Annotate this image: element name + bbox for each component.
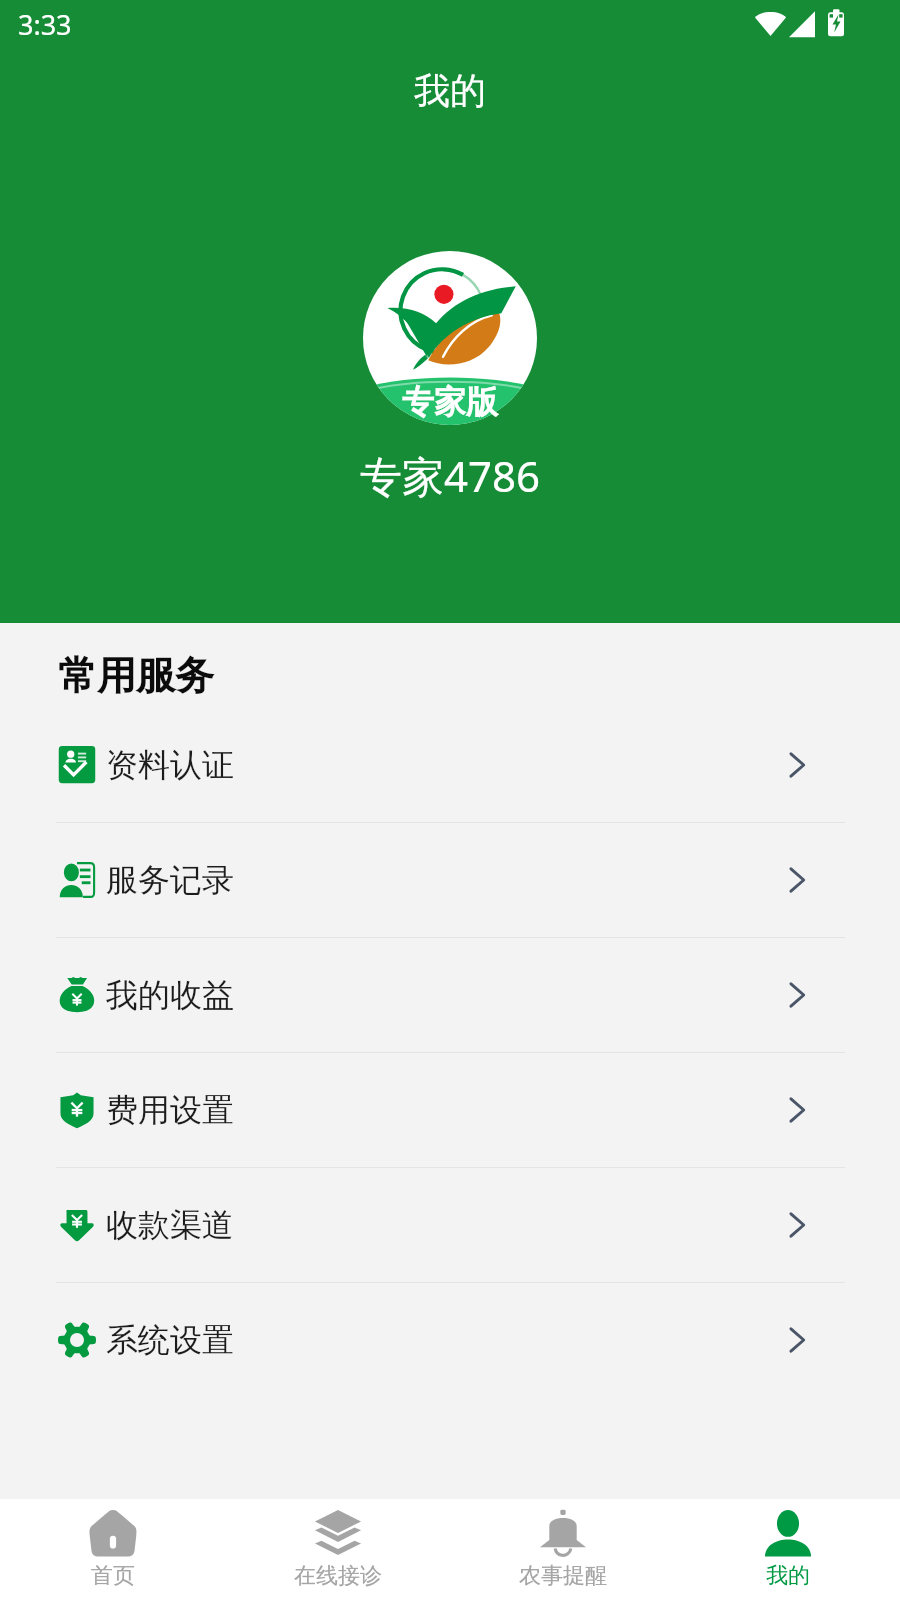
staticText: 系统设置 bbox=[106, 1320, 234, 1360]
staticText: 3:33 bbox=[18, 6, 72, 43]
staticText: 农事提醒 bbox=[519, 1562, 607, 1590]
button[interactable]: 服务记录 bbox=[0, 823, 900, 937]
staticText: 资料认证 bbox=[106, 745, 234, 785]
staticText: 收款渠道 bbox=[106, 1205, 234, 1245]
button[interactable]: 农事提醒 bbox=[450, 1499, 675, 1600]
button[interactable]: 在线接诊 bbox=[225, 1499, 450, 1600]
button[interactable]: 收款渠道 bbox=[0, 1168, 900, 1282]
staticText: 首页 bbox=[91, 1562, 135, 1590]
staticText: 专家4786 bbox=[360, 447, 541, 504]
staticText: 服务记录 bbox=[106, 860, 234, 900]
staticText: 我的收益 bbox=[106, 975, 234, 1015]
staticText: 费用设置 bbox=[106, 1090, 234, 1130]
button[interactable]: 我的收益 bbox=[0, 938, 900, 1052]
staticText: 专家版 bbox=[402, 382, 498, 422]
button[interactable]: 资料认证 bbox=[0, 708, 900, 822]
staticText: 常用服务 bbox=[58, 651, 214, 700]
button[interactable]: 费用设置 bbox=[0, 1053, 900, 1167]
staticText: 在线接诊 bbox=[294, 1562, 382, 1590]
button[interactable]: 系统设置 bbox=[0, 1283, 900, 1397]
button[interactable]: 我的 bbox=[675, 1499, 900, 1600]
staticText: 我的 bbox=[766, 1562, 810, 1590]
button[interactable]: 首页 bbox=[0, 1499, 225, 1600]
staticText: 我的 bbox=[0, 68, 900, 113]
